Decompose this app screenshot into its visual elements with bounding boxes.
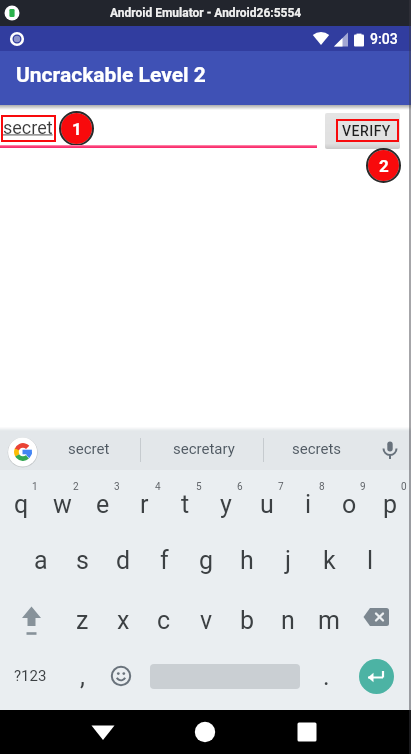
button[interactable]: c <box>144 590 184 650</box>
staticText: 4 <box>155 481 161 493</box>
staticText: secret <box>68 440 110 458</box>
button[interactable]: r <box>124 474 164 534</box>
staticText: v <box>200 606 213 635</box>
staticText: w <box>53 490 72 519</box>
button[interactable] <box>359 659 394 694</box>
staticText: d <box>116 546 131 575</box>
staticText: f <box>160 546 169 575</box>
button[interactable] <box>379 437 401 459</box>
button[interactable] <box>8 598 52 642</box>
staticText: u <box>260 490 274 519</box>
button[interactable]: g <box>186 530 226 590</box>
staticText: 9 <box>360 481 366 493</box>
button[interactable]: m <box>309 590 349 650</box>
button[interactable]: t <box>165 474 205 534</box>
button[interactable]: z <box>62 590 102 650</box>
staticText: m <box>318 606 340 635</box>
staticText: e <box>96 490 110 519</box>
staticText: 5 <box>196 481 202 493</box>
button[interactable]: ?123 <box>6 662 54 690</box>
button[interactable] <box>63 710 143 754</box>
staticText: , <box>80 662 85 691</box>
staticText: x <box>117 606 130 635</box>
staticText: secretary <box>173 440 235 458</box>
staticText: l <box>367 546 374 575</box>
staticText: o <box>342 490 357 519</box>
button[interactable] <box>8 437 38 467</box>
button[interactable] <box>165 710 245 754</box>
button[interactable]: q <box>1 474 41 534</box>
button[interactable]: v <box>186 590 226 650</box>
staticText: b <box>240 606 255 635</box>
staticText: z <box>76 606 89 635</box>
staticText: 8 <box>319 481 325 493</box>
button[interactable]: secretary <box>152 427 256 470</box>
staticText: . <box>323 662 330 691</box>
button[interactable]: VERIFY <box>325 113 400 149</box>
staticText: 9:03 <box>370 31 398 47</box>
button[interactable]: n <box>268 590 308 650</box>
staticText: y <box>220 490 232 519</box>
staticText: n <box>281 606 295 635</box>
staticText: VERIFY <box>342 123 391 139</box>
staticText: j <box>285 546 291 575</box>
staticText: 0 <box>401 481 407 493</box>
button[interactable]: o <box>329 474 369 534</box>
staticText: s <box>76 546 89 575</box>
button[interactable]: b <box>227 590 267 650</box>
button[interactable]: f <box>144 530 184 590</box>
staticText: k <box>323 546 336 575</box>
button[interactable]: l <box>350 530 390 590</box>
staticText: 6 <box>237 481 243 493</box>
staticText: 2 <box>73 481 79 493</box>
staticText: c <box>157 606 171 635</box>
button[interactable]: . <box>306 654 346 698</box>
button[interactable] <box>108 663 134 689</box>
button[interactable]: d <box>103 530 143 590</box>
button[interactable]: x <box>103 590 143 650</box>
button[interactable]: secret <box>28 427 150 470</box>
staticText: Uncrackable Level 2 <box>16 63 206 88</box>
staticText: 1 <box>72 119 82 139</box>
button[interactable]: j <box>268 530 308 590</box>
staticText: r <box>140 490 149 519</box>
button[interactable]: i <box>288 474 328 534</box>
staticText: h <box>240 546 254 575</box>
staticText: Android Emulator - Android26:5554 <box>110 6 302 20</box>
button[interactable] <box>353 598 397 642</box>
staticText: p <box>383 490 398 519</box>
button[interactable]: e <box>83 474 123 534</box>
button[interactable] <box>267 710 347 754</box>
staticText: t <box>181 490 190 519</box>
button[interactable]: s <box>62 530 102 590</box>
staticText: a <box>34 546 48 575</box>
staticText: 2 <box>379 156 389 176</box>
staticText: ?123 <box>14 667 47 685</box>
button[interactable]: k <box>309 530 349 590</box>
button[interactable]: w <box>42 474 82 534</box>
staticText: 7 <box>278 481 284 493</box>
button[interactable]: , <box>62 654 102 698</box>
button[interactable]: p <box>370 474 410 534</box>
button[interactable]: h <box>227 530 267 590</box>
button[interactable]: secret <box>3 117 53 138</box>
button[interactable]: a <box>21 530 61 590</box>
staticText: q <box>14 490 29 519</box>
staticText: 3 <box>114 481 120 493</box>
button[interactable]: y <box>206 474 246 534</box>
staticText: g <box>199 546 214 575</box>
staticText: 1 <box>32 481 38 493</box>
staticText: i <box>305 490 312 519</box>
staticText: secrets <box>292 440 342 458</box>
button[interactable]: u <box>247 474 287 534</box>
button[interactable]: secrets <box>270 427 364 470</box>
